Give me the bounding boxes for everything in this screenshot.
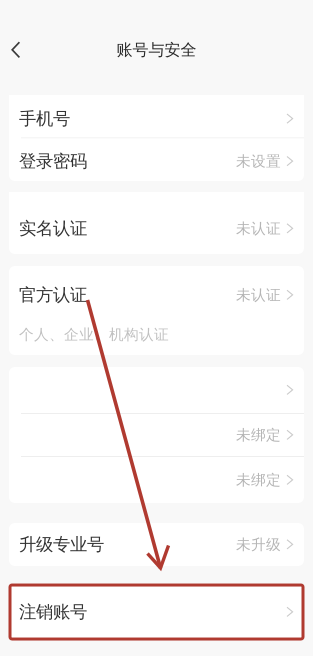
staticText: 实名认证 [19, 218, 87, 239]
button[interactable]: 未绑定 [9, 414, 304, 456]
staticText: 未绑定 [236, 471, 281, 489]
staticText: 未认证 [236, 286, 281, 304]
staticText: 未设置 [236, 152, 281, 170]
button[interactable]: 升级专业号 [9, 523, 304, 566]
staticText: 官方认证 [19, 284, 87, 306]
button[interactable]: 返回 [0, 32, 35, 68]
staticText: 未认证 [236, 219, 281, 237]
staticText: 未升级 [236, 535, 281, 553]
staticText: 升级专业号 [19, 534, 104, 555]
staticText: 账号与安全 [116, 40, 196, 60]
button[interactable]: 官方认证 [9, 266, 304, 355]
button[interactable]: 注销账号 [9, 585, 304, 639]
staticText: 登录密码 [19, 151, 87, 172]
button[interactable]: 登录密码 [9, 138, 304, 181]
staticText: 手机号 [19, 108, 70, 129]
staticText: 个人、企业、机构认证 [19, 325, 169, 343]
button[interactable]: 未绑定 [9, 457, 304, 503]
staticText: 注销账号 [19, 601, 87, 623]
button[interactable]: 手机号 [9, 95, 304, 137]
button[interactable] [9, 367, 304, 413]
button[interactable]: 实名认证 [9, 192, 304, 254]
staticText: 未绑定 [236, 426, 281, 444]
